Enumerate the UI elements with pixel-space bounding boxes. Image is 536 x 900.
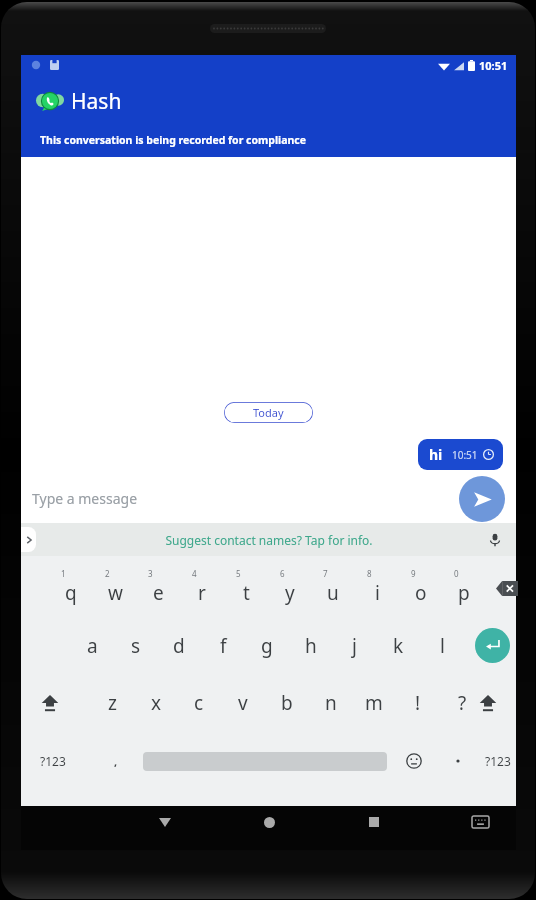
staticText: k bbox=[393, 633, 404, 659]
button[interactable]: Home bbox=[252, 805, 286, 839]
staticText: t bbox=[243, 580, 250, 606]
button[interactable]: f bbox=[202, 617, 244, 674]
staticText: 10:51 bbox=[452, 448, 478, 462]
button[interactable]: n bbox=[311, 674, 351, 731]
button[interactable]: 2 bbox=[94, 560, 136, 617]
staticText: d bbox=[173, 633, 185, 659]
staticText: g bbox=[261, 633, 273, 659]
staticText: q bbox=[65, 580, 77, 606]
staticText: Suggest contact names? Tap for info. bbox=[165, 532, 373, 548]
staticText: c bbox=[194, 690, 204, 716]
button[interactable]: h bbox=[290, 617, 332, 674]
button[interactable]: 8 bbox=[356, 560, 398, 617]
staticText: 2 bbox=[105, 568, 110, 579]
staticText: ! bbox=[415, 690, 421, 716]
staticText: 10:51 bbox=[479, 58, 508, 73]
button[interactable]: Enter bbox=[475, 628, 510, 663]
button[interactable]: c bbox=[179, 674, 219, 731]
button[interactable]: Backspace bbox=[487, 560, 527, 617]
button[interactable]: ?123 bbox=[477, 731, 519, 791]
staticText: ?123 bbox=[40, 753, 66, 769]
staticText: Today bbox=[253, 405, 284, 420]
staticText: s bbox=[131, 633, 141, 659]
button[interactable]: m bbox=[354, 674, 394, 731]
button[interactable]: ?123 bbox=[32, 731, 74, 791]
button[interactable]: Recent apps bbox=[357, 805, 391, 839]
staticText: b bbox=[281, 690, 293, 716]
staticText: h bbox=[305, 633, 317, 659]
button[interactable]: l bbox=[421, 617, 463, 674]
button[interactable]: Period bbox=[445, 731, 471, 791]
button[interactable]: 6 bbox=[269, 560, 311, 617]
staticText: u bbox=[327, 580, 339, 606]
button[interactable]: 1 bbox=[50, 560, 92, 617]
button[interactable]: 0 bbox=[443, 560, 485, 617]
staticText: v bbox=[238, 690, 248, 716]
button[interactable]: 3 bbox=[137, 560, 179, 617]
staticText: Hash bbox=[71, 87, 122, 116]
button[interactable]: j bbox=[333, 617, 375, 674]
staticText: r bbox=[198, 580, 206, 606]
button[interactable]: Shift bbox=[468, 674, 508, 731]
staticText: e bbox=[153, 580, 164, 606]
staticText: x bbox=[151, 690, 162, 716]
button[interactable]: b bbox=[267, 674, 307, 731]
other: App logo bbox=[37, 88, 63, 114]
staticText: l bbox=[440, 633, 445, 659]
button[interactable]: ! bbox=[398, 674, 438, 731]
button[interactable]: z bbox=[92, 674, 132, 731]
staticText: z bbox=[108, 690, 117, 716]
staticText: p bbox=[458, 580, 470, 606]
button[interactable]: Expand suggestions bbox=[21, 527, 36, 552]
staticText: w bbox=[108, 580, 123, 606]
staticText: hi bbox=[429, 445, 443, 464]
button[interactable]: 4 bbox=[181, 560, 223, 617]
button[interactable]: a bbox=[71, 617, 113, 674]
button[interactable]: Comma bbox=[103, 731, 129, 791]
button[interactable]: Back bbox=[148, 805, 182, 839]
button[interactable]: s bbox=[115, 617, 157, 674]
staticText: n bbox=[325, 690, 337, 716]
staticText: 1 bbox=[61, 568, 66, 579]
button[interactable]: Send bbox=[459, 476, 505, 522]
staticText: 5 bbox=[236, 568, 241, 579]
button[interactable]: Type a message bbox=[32, 489, 138, 508]
button[interactable]: Shift bbox=[30, 674, 70, 731]
button[interactable]: 5 bbox=[225, 560, 267, 617]
button[interactable]: 7 bbox=[312, 560, 354, 617]
button[interactable]: ? bbox=[442, 674, 482, 731]
staticText: a bbox=[87, 633, 98, 659]
staticText: y bbox=[285, 580, 295, 606]
staticText: This conversation is being recorded for … bbox=[40, 133, 306, 147]
button[interactable]: Today bbox=[224, 402, 313, 423]
staticText: o bbox=[415, 580, 427, 606]
staticText: ? bbox=[458, 690, 467, 716]
staticText: 3 bbox=[148, 568, 153, 579]
staticText: ?123 bbox=[485, 753, 511, 769]
staticText: 8 bbox=[367, 568, 372, 579]
button[interactable]: d bbox=[158, 617, 200, 674]
staticText: m bbox=[365, 690, 383, 716]
button[interactable]: x bbox=[136, 674, 176, 731]
staticText: 6 bbox=[280, 568, 285, 579]
button[interactable]: Hide keyboard bbox=[463, 805, 497, 839]
staticText: 9 bbox=[411, 568, 416, 579]
button[interactable]: Emoji bbox=[399, 731, 429, 791]
button[interactable]: g bbox=[246, 617, 288, 674]
staticText: 7 bbox=[323, 568, 328, 579]
staticText: 0 bbox=[454, 568, 459, 579]
button[interactable]: k bbox=[377, 617, 419, 674]
staticText: j bbox=[352, 633, 357, 659]
button[interactable]: Voice input bbox=[484, 529, 506, 551]
button[interactable]: v bbox=[223, 674, 263, 731]
staticText: f bbox=[220, 633, 227, 659]
button[interactable]: Expand suggestions bbox=[21, 523, 516, 556]
button[interactable]: 9 bbox=[400, 560, 442, 617]
staticText: , bbox=[114, 754, 118, 769]
button[interactable]: hi bbox=[418, 439, 503, 470]
staticText: i bbox=[375, 580, 380, 606]
staticText: 4 bbox=[192, 568, 197, 579]
